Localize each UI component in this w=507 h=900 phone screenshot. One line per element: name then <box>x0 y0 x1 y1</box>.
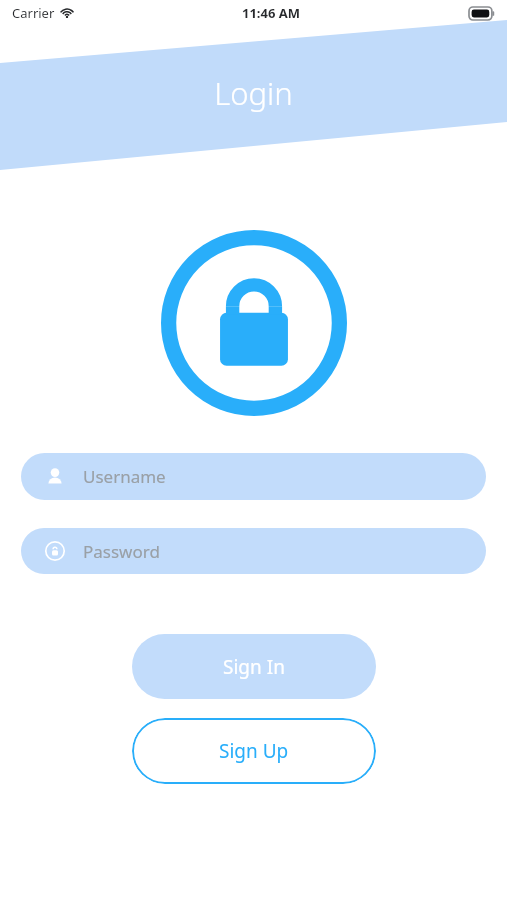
staticText: Username <box>83 465 166 488</box>
staticText: 11:46 AM <box>242 4 301 22</box>
button[interactable]: Sign Up <box>132 718 376 784</box>
button[interactable]: Password <box>21 528 486 574</box>
button[interactable]: Sign In <box>132 634 376 699</box>
staticText: Login <box>0 72 507 114</box>
staticText: Sign In <box>223 654 285 680</box>
staticText: Carrier <box>12 4 55 22</box>
staticText: Sign Up <box>219 738 289 764</box>
staticText: Password <box>83 540 160 563</box>
button[interactable]: Username <box>21 453 486 500</box>
